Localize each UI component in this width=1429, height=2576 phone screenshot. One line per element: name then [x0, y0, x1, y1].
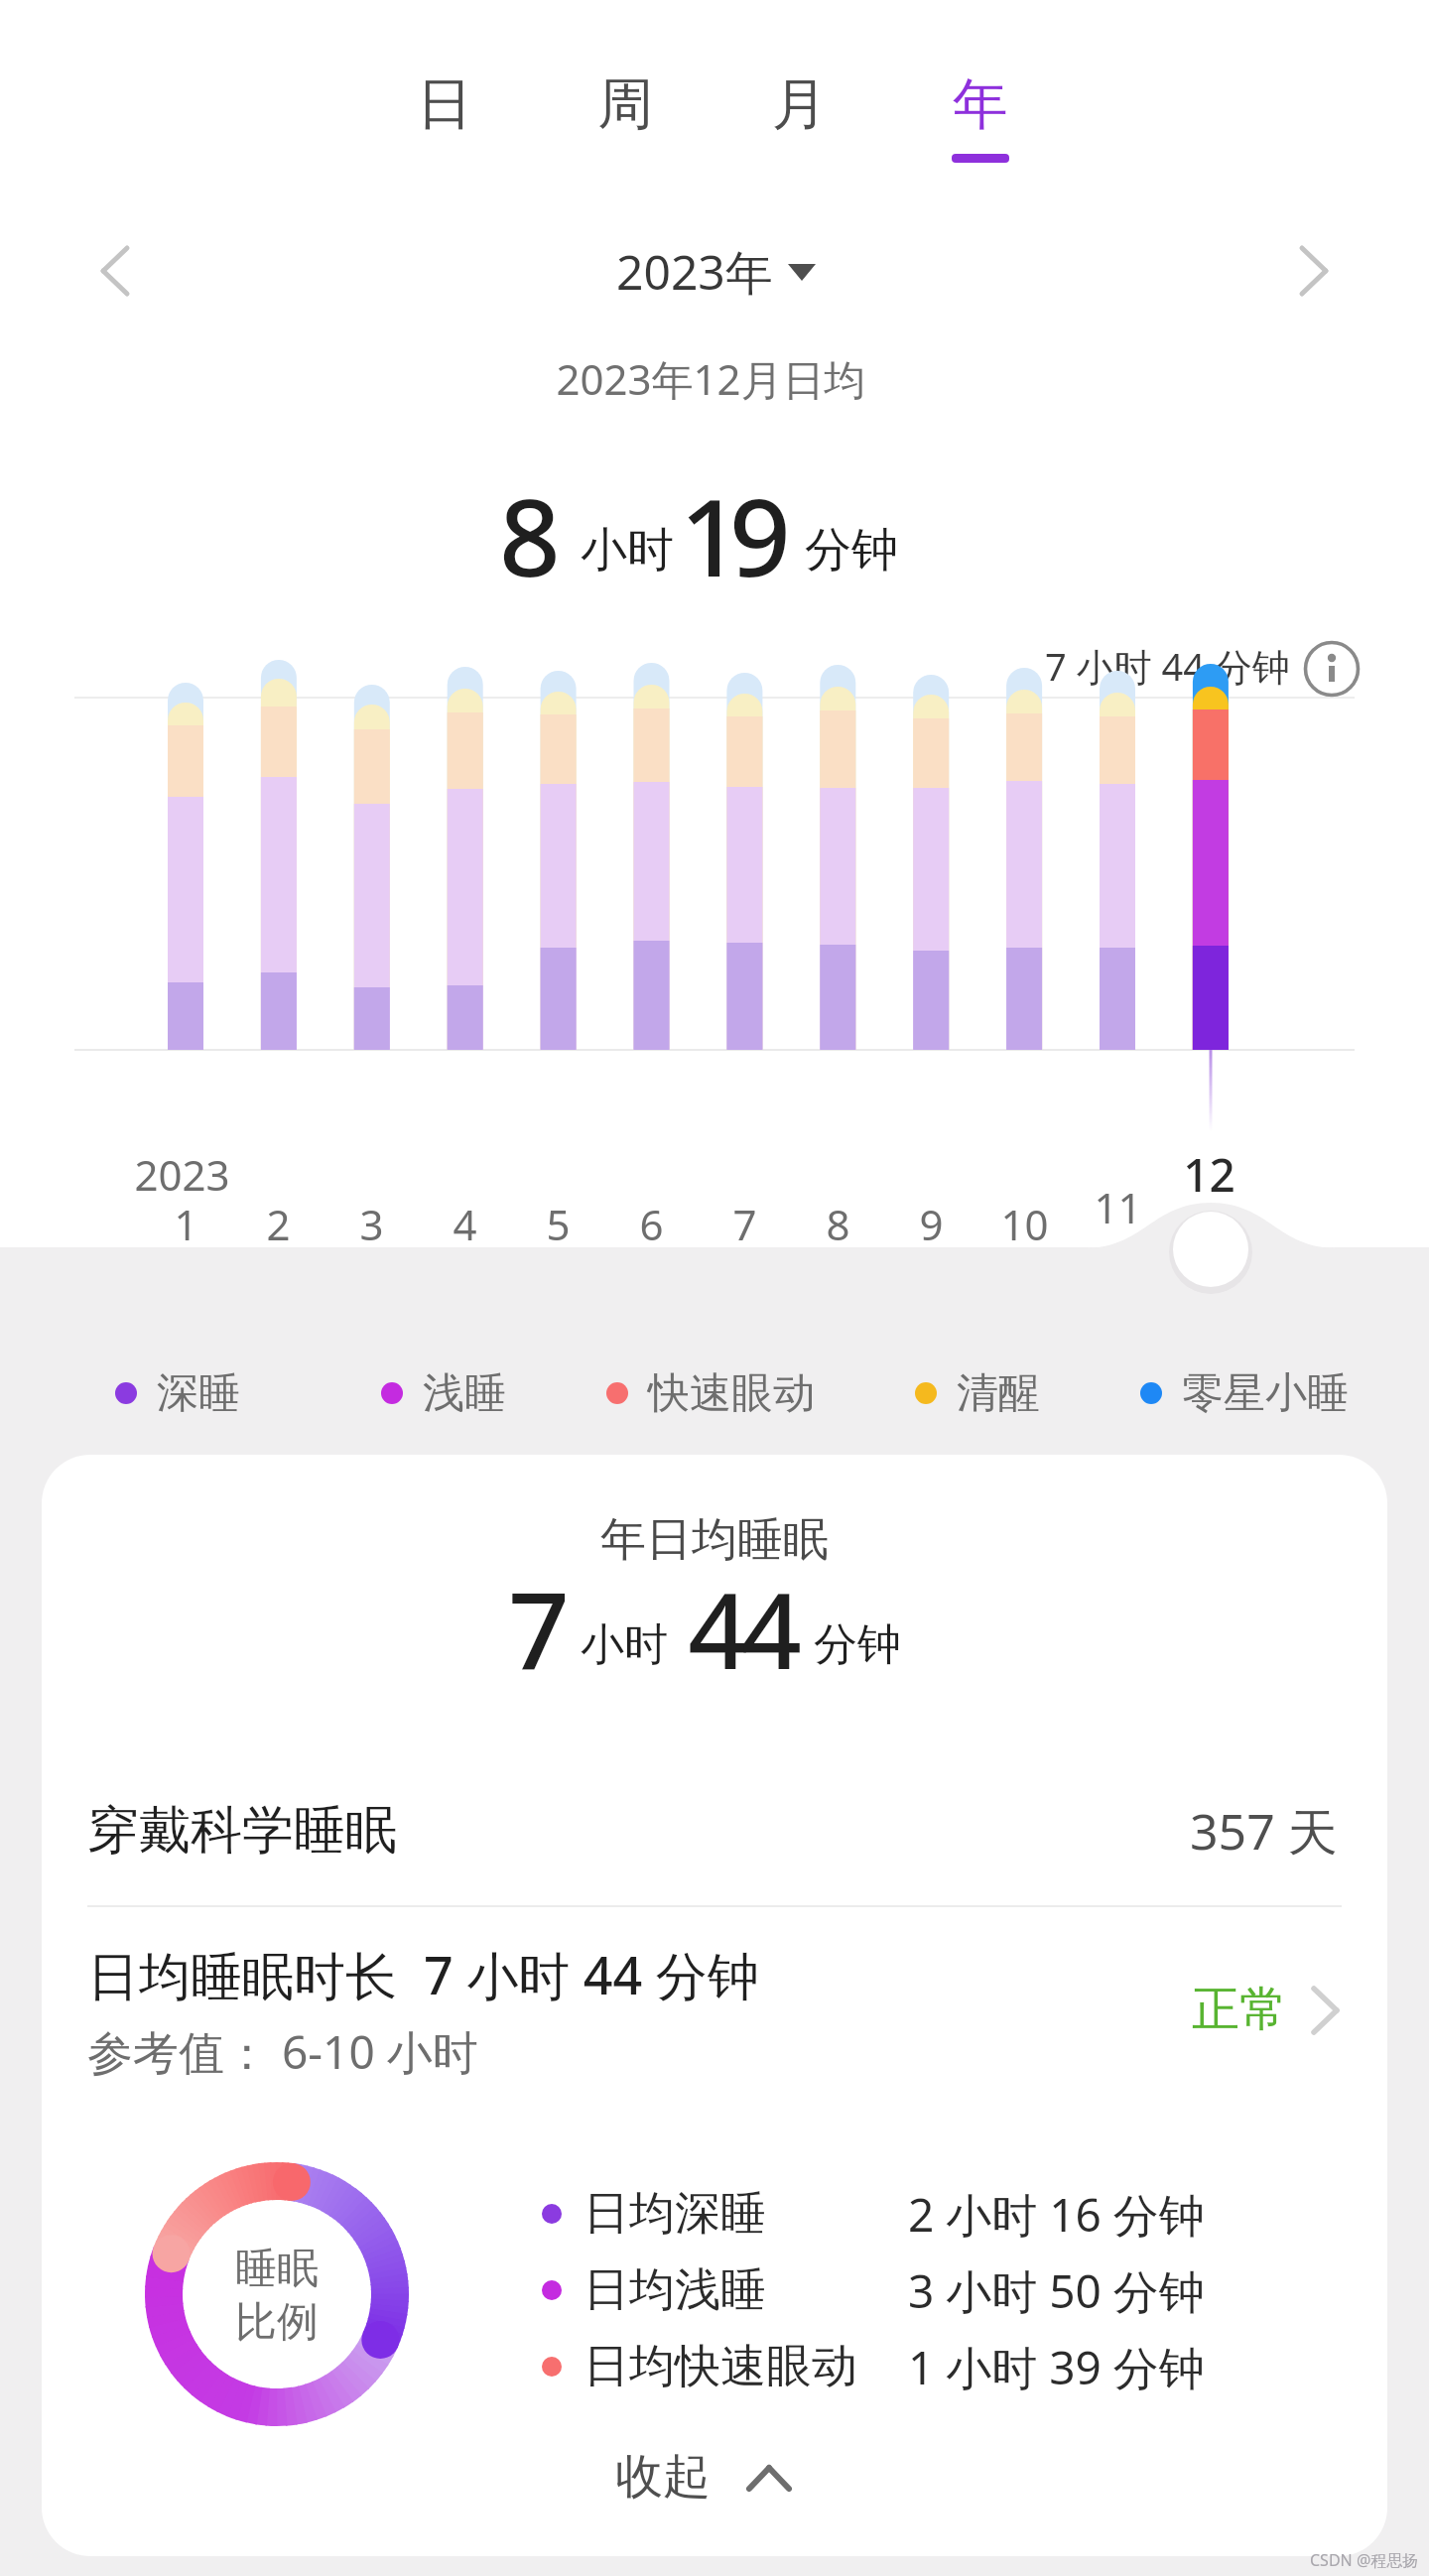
staticText: 清醒: [957, 1367, 1040, 1420]
staticText: 2: [266, 1196, 291, 1252]
staticText: 1 小时 39 分钟: [908, 2336, 1205, 2398]
staticText: 7: [508, 1556, 570, 1702]
staticText: 2023年12月日均: [556, 350, 866, 407]
staticText: 8: [826, 1196, 850, 1252]
button[interactable]: 2023年: [556, 228, 834, 316]
staticText: CSDN @程思扬: [1310, 2549, 1419, 2571]
staticText: 4: [453, 1196, 477, 1252]
staticText: 正常: [1192, 1980, 1287, 2039]
staticText: 12: [1183, 1143, 1235, 1206]
staticText: 10: [1000, 1196, 1049, 1252]
staticText: 年日均睡眠: [600, 1511, 829, 1569]
staticText: 7 小时 44 分钟: [1045, 640, 1290, 692]
staticText: 日均睡眠时长 7 小时 44 分钟: [87, 1939, 759, 2009]
staticText: 零星小睡: [1182, 1367, 1349, 1420]
staticText: 3: [359, 1196, 384, 1252]
staticText: 2 小时 16 分钟: [908, 2183, 1205, 2246]
staticText: 1: [174, 1196, 198, 1252]
staticText: 周: [597, 69, 653, 140]
staticText: 2023年: [616, 239, 773, 305]
staticText: 睡眠: [235, 2243, 319, 2295]
staticText: 穿戴科学睡眠: [87, 1798, 397, 1864]
staticText: 浅睡: [423, 1367, 506, 1420]
staticText: 9: [919, 1196, 944, 1252]
staticText: 357 天: [1190, 1797, 1338, 1865]
button[interactable]: [54, 1920, 1375, 2099]
staticText: 3 小时 50 分钟: [908, 2259, 1205, 2322]
staticText: 7: [732, 1196, 757, 1252]
staticText: 比例: [235, 2296, 319, 2349]
staticText: 5: [546, 1196, 571, 1252]
staticText: 深睡: [157, 1367, 240, 1420]
staticText: 8: [499, 462, 561, 608]
button[interactable]: 月: [745, 50, 854, 159]
staticText: 日均快速眼动: [584, 2338, 857, 2395]
staticText: 日均浅睡: [584, 2261, 766, 2319]
staticText: 年: [953, 69, 1008, 140]
button[interactable]: [54, 1761, 1375, 1900]
staticText: 4: [688, 1557, 748, 1700]
staticText: 收起: [615, 2447, 711, 2507]
staticText: 日均深睡: [584, 2185, 766, 2243]
button[interactable]: 年: [926, 50, 1035, 159]
staticText: 小时: [581, 1617, 668, 1672]
staticText: 1: [680, 462, 741, 608]
staticText: 6: [639, 1196, 664, 1252]
staticText: 参考值： 6-10 小时: [87, 2020, 478, 2083]
staticText: 9: [729, 462, 791, 608]
button[interactable]: 日: [390, 50, 499, 159]
button[interactable]: [1302, 639, 1362, 699]
staticText: 日: [417, 69, 472, 140]
staticText: 分钟: [814, 1617, 901, 1672]
staticText: 小时: [581, 521, 674, 580]
staticText: 月: [772, 69, 828, 140]
button[interactable]: 周: [571, 50, 680, 159]
staticText: 快速眼动: [648, 1367, 815, 1420]
staticText: 4: [741, 1557, 802, 1700]
staticText: 2023: [134, 1146, 230, 1203]
button[interactable]: [79, 228, 169, 318]
staticText: 11: [1094, 1179, 1142, 1235]
button[interactable]: [556, 2431, 873, 2525]
staticText: 分钟: [805, 521, 898, 580]
button[interactable]: [1270, 228, 1360, 318]
